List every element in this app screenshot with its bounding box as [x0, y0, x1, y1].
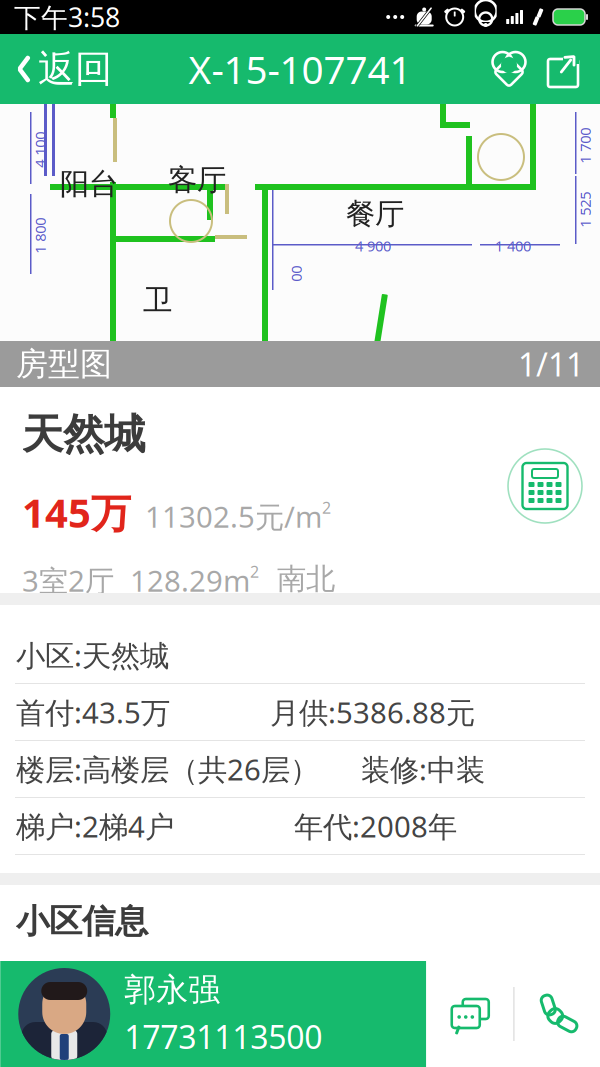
staticText: 11302.5元/m: [145, 497, 322, 536]
staticText: 餐厅: [346, 196, 404, 232]
button[interactable]: 收藏: [482, 34, 536, 104]
staticText: 1 400: [495, 236, 531, 255]
staticText: 阳台: [60, 166, 118, 202]
staticText: 1 700: [567, 136, 600, 155]
staticText: 月供:5386.88元: [270, 692, 475, 731]
staticText: 楼层:高楼层（共26层）: [16, 749, 319, 788]
button[interactable]: 分享: [536, 34, 590, 104]
button[interactable]: 返回: [0, 34, 122, 104]
staticText: 2: [322, 497, 331, 518]
staticText: 返回: [38, 46, 112, 92]
staticText: 客厅: [168, 162, 226, 198]
staticText: 首付:43.5万: [16, 692, 170, 731]
staticText: 梯户:2梯4户: [16, 806, 174, 845]
staticText: X-15-107741: [188, 43, 411, 95]
staticText: 3室2厅 128.29m: [22, 561, 250, 600]
staticText: 郭永强: [124, 970, 220, 1009]
staticText: 年代:2008年: [294, 806, 457, 845]
button[interactable]: 郭永强: [0, 961, 426, 1067]
staticText: 小区信息: [16, 901, 148, 942]
staticText: 2: [250, 561, 259, 582]
staticText: 小区:天然城: [16, 635, 169, 674]
staticText: 145万: [22, 486, 131, 539]
staticText: 4 100: [22, 140, 58, 159]
staticText: 17731113500: [124, 1015, 322, 1058]
staticText: 1 800: [22, 226, 58, 245]
button[interactable]: 房贷计算器: [508, 449, 582, 523]
staticText: 下午3:58: [14, 0, 120, 35]
staticText: 南北: [259, 561, 335, 597]
staticText: 1/11: [518, 343, 584, 385]
staticText: 4 900: [355, 236, 391, 255]
staticText: 天然城: [22, 409, 145, 460]
staticText: 房型图: [16, 344, 112, 384]
staticText: 1 525: [567, 200, 600, 219]
staticText: 卫: [143, 282, 172, 318]
staticText: 装修:中装: [361, 749, 485, 788]
button[interactable]: 拨打电话: [515, 961, 600, 1067]
button[interactable]: 在线咨询: [426, 961, 513, 1067]
staticText: 00: [288, 264, 304, 283]
